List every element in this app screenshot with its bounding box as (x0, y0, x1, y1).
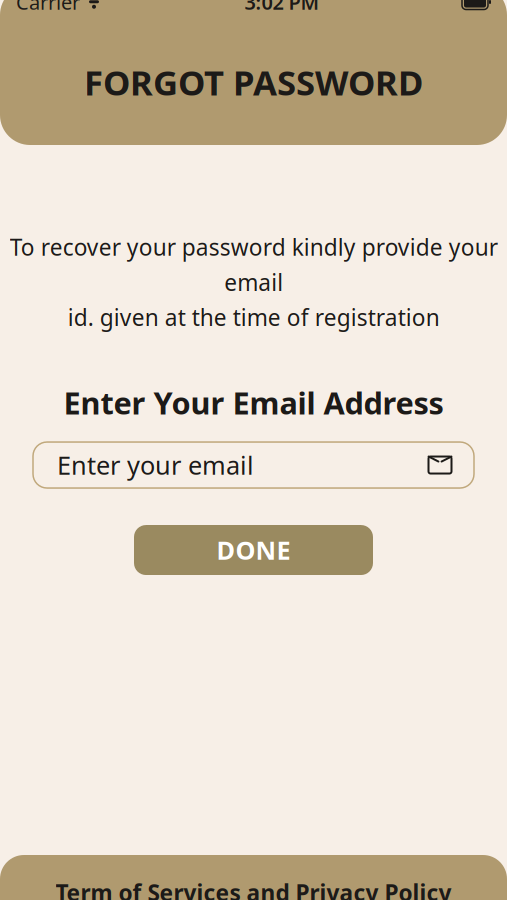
staticText: Enter Your Email Address (63, 382, 443, 423)
staticText: 3:02 PM (244, 0, 319, 15)
button[interactable]: Enter your email (33, 442, 474, 488)
staticText: DONE (216, 533, 290, 567)
button[interactable]: DONE (134, 525, 373, 575)
button[interactable]: Term of Services and Privacy Policy (0, 855, 507, 900)
staticText: Enter your email (57, 448, 254, 482)
staticText: FORGOT PASSWORD (84, 59, 423, 105)
staticText: Carrier (16, 0, 80, 15)
staticText: To recover your password kindly provide … (9, 232, 497, 332)
staticText: Term of Services and Privacy Policy (55, 877, 451, 900)
